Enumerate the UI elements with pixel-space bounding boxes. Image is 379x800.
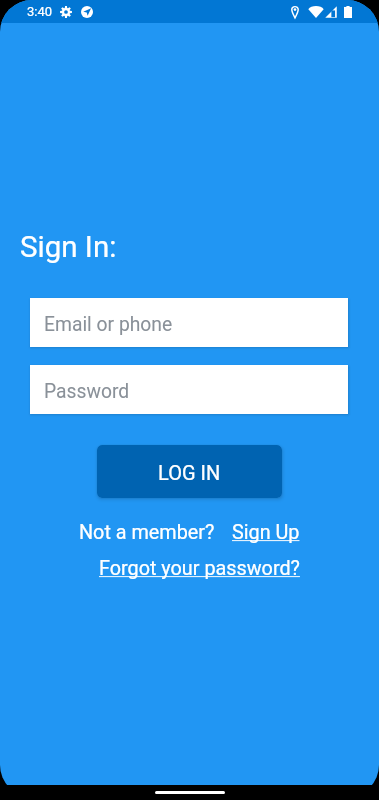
staticText: Forgot your password? (99, 557, 300, 580)
staticText: Not a member? (79, 521, 215, 544)
button[interactable]: Forgot your password? (99, 557, 300, 580)
other: Wi-Fi (308, 5, 324, 18)
staticText: Sign In: (20, 230, 117, 265)
other: Location (291, 5, 299, 18)
other: Home gesture handle (155, 791, 225, 794)
button[interactable]: Email or phone (30, 298, 348, 347)
staticText: Sign Up (232, 521, 300, 544)
other: Mobile signal (325, 6, 337, 18)
staticText: 3:40 (27, 4, 53, 19)
other: Battery (344, 6, 352, 18)
button[interactable]: Password (30, 365, 348, 414)
button[interactable]: Sign Up (232, 521, 300, 544)
staticText: LOG IN (158, 461, 221, 484)
other: Settings (60, 6, 72, 18)
button[interactable]: LOG IN (97, 445, 282, 498)
staticText: Password (44, 380, 130, 403)
other: Location active (81, 6, 93, 18)
staticText: Email or phone (44, 313, 173, 336)
